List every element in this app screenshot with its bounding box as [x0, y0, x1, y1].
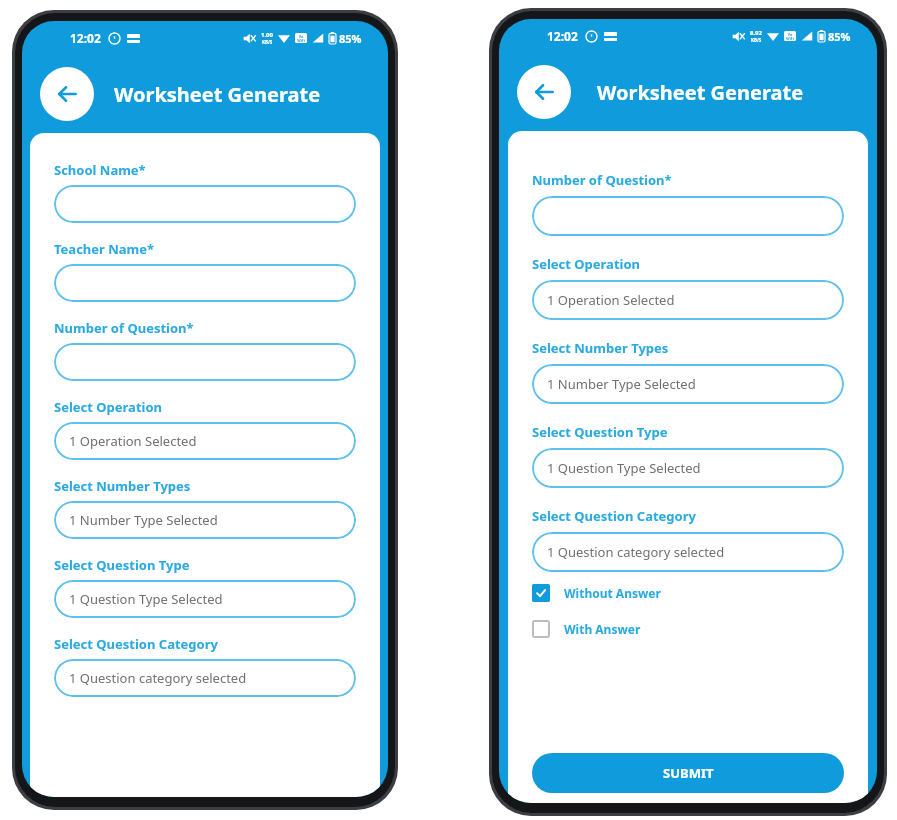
staticText: 8.92	[750, 29, 762, 37]
staticText: Without Answer	[564, 585, 661, 601]
button[interactable]: 1 Operation Selected	[54, 422, 356, 460]
staticText: KB/S	[262, 39, 273, 45]
button[interactable]: Without Answer	[532, 584, 661, 602]
button[interactable]	[54, 264, 356, 302]
staticText: 1 Question category selected	[69, 669, 247, 687]
staticText: Number of Question*	[54, 319, 194, 337]
staticText: With Answer	[564, 621, 641, 637]
button[interactable]	[54, 343, 356, 381]
button[interactable]: 1 Question category selected	[532, 532, 844, 572]
staticText: 1 Question Type Selected	[547, 459, 701, 477]
staticText: 1.00	[261, 31, 273, 39]
staticText: 1 Number Type Selected	[69, 511, 218, 529]
staticText: Select Question Type	[54, 556, 190, 574]
staticText: 1 Operation Selected	[547, 291, 675, 309]
staticText: 12:02	[547, 28, 578, 44]
staticText: Number of Question*	[532, 171, 672, 189]
staticText: Teacher Name*	[54, 240, 155, 258]
button[interactable]: 1 Number Type Selected	[532, 364, 844, 404]
staticText: Worksheet Generate	[114, 81, 321, 108]
staticText: Vo WiFi	[786, 32, 794, 41]
button[interactable]: With Answer	[532, 620, 641, 638]
button[interactable]: 1 Question category selected	[54, 659, 356, 697]
button[interactable]: 1 Number Type Selected	[54, 501, 356, 539]
staticText: SUBMIT	[663, 764, 714, 782]
staticText: 1 Operation Selected	[69, 432, 197, 450]
button[interactable]: Back	[40, 67, 94, 121]
staticText: Vo WiFi	[297, 34, 305, 43]
staticText: KB/S	[751, 37, 762, 43]
staticText: 1 Number Type Selected	[547, 375, 696, 393]
staticText: School Name*	[54, 161, 146, 179]
staticText: 12:02	[70, 30, 101, 46]
staticText: Select Operation	[532, 255, 640, 273]
staticText: Select Question Type	[532, 423, 668, 441]
button[interactable]	[532, 196, 844, 236]
button[interactable]: 1 Question Type Selected	[532, 448, 844, 488]
button[interactable]: Back	[517, 65, 571, 119]
button[interactable]	[54, 185, 356, 223]
button[interactable]: 1 Question Type Selected	[54, 580, 356, 618]
staticText: 85%	[828, 29, 851, 44]
button[interactable]: SUBMIT	[532, 753, 844, 793]
staticText: Select Question Category	[54, 635, 218, 653]
staticText: Select Number Types	[54, 477, 191, 495]
staticText: 1 Question Type Selected	[69, 590, 223, 608]
staticText: Select Operation	[54, 398, 162, 416]
staticText: Worksheet Generate	[597, 79, 804, 106]
staticText: Select Question Category	[532, 507, 696, 525]
button[interactable]: 1 Operation Selected	[532, 280, 844, 320]
staticText: 1 Question category selected	[547, 543, 725, 561]
staticText: Select Number Types	[532, 339, 669, 357]
staticText: 85%	[339, 31, 362, 46]
